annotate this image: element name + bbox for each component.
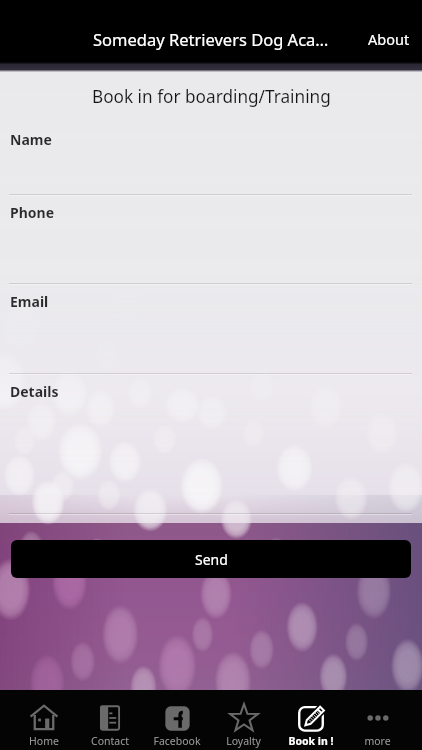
staticText: Someday Retrievers Dog Aca…: [93, 28, 329, 50]
staticText: Contact: [91, 734, 129, 748]
button[interactable]: More: [344, 690, 411, 750]
staticText: Phone: [10, 203, 55, 222]
staticText: more: [364, 734, 391, 748]
button[interactable]: Loyalty: [210, 690, 277, 750]
button[interactable]: Contact: [77, 690, 143, 750]
staticText: Loyalty: [226, 734, 261, 748]
button[interactable]: Facebook: [143, 690, 210, 750]
button[interactable]: Send: [11, 540, 411, 578]
staticText: Book in for boarding/Training: [92, 85, 331, 108]
staticText: Send: [195, 550, 228, 569]
staticText: About: [368, 29, 410, 49]
button[interactable]: Home: [11, 690, 77, 750]
staticText: Facebook: [153, 734, 201, 748]
staticText: Email: [10, 292, 49, 311]
button[interactable]: About: [354, 23, 422, 55]
staticText: Book in !: [288, 734, 334, 748]
staticText: Details: [10, 382, 59, 401]
staticText: Home: [29, 734, 59, 748]
staticText: Name: [10, 130, 52, 149]
button[interactable]: Book in: [277, 690, 344, 750]
